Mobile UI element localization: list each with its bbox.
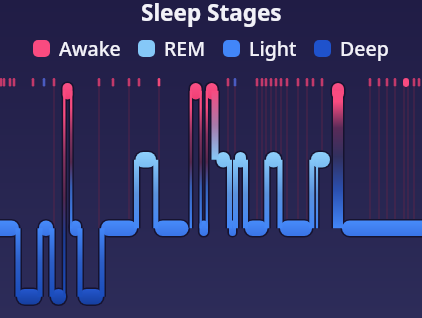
staticText: Sleep Stages bbox=[141, 0, 282, 28]
staticText: Deep bbox=[340, 35, 389, 62]
staticText: Light bbox=[249, 35, 297, 62]
staticText: Awake bbox=[59, 35, 121, 62]
button[interactable]: Awake bbox=[33, 35, 121, 62]
button[interactable]: Deep bbox=[314, 35, 389, 62]
button[interactable]: Light bbox=[223, 35, 297, 62]
staticText: REM bbox=[164, 35, 206, 62]
button[interactable]: REM bbox=[138, 35, 206, 62]
